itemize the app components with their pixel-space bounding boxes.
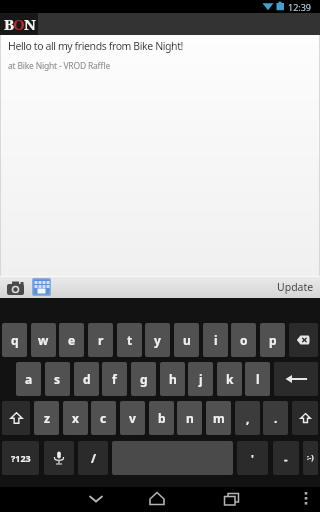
button[interactable] (32, 278, 51, 296)
button[interactable]: Update (271, 276, 320, 298)
button[interactable]: u (174, 323, 199, 357)
button[interactable]: b (149, 401, 174, 435)
button[interactable] (274, 362, 318, 396)
staticText: x (72, 410, 79, 426)
staticText: at Bike Night - VROD Raffle (8, 60, 110, 72)
button[interactable] (145, 487, 169, 512)
staticText: u (183, 332, 191, 348)
button[interactable]: f (102, 362, 127, 396)
button[interactable]: , (235, 401, 260, 435)
button[interactable]: e (59, 323, 84, 357)
button[interactable]: BON (0, 13, 38, 35)
staticText: q (11, 332, 19, 348)
staticText: v (129, 410, 136, 426)
staticText: w (38, 332, 49, 348)
button[interactable] (5, 280, 26, 295)
staticText: t (127, 332, 133, 348)
staticText: . (274, 410, 278, 426)
button[interactable]: q (2, 323, 27, 357)
staticText: c (100, 410, 107, 426)
button[interactable]: k (217, 362, 242, 396)
staticText: , (246, 410, 250, 426)
staticText: k (226, 371, 234, 387)
staticText: :-) (307, 453, 314, 463)
staticText: p (269, 332, 277, 348)
button[interactable] (84, 487, 108, 512)
button[interactable]: l (245, 362, 270, 396)
staticText: d (83, 371, 91, 387)
staticText: r (98, 332, 104, 348)
button[interactable]: s (45, 362, 70, 396)
button[interactable]: o (231, 323, 256, 357)
staticText: l (256, 371, 260, 387)
button[interactable]: . (263, 401, 288, 435)
staticText: b (158, 410, 166, 426)
button[interactable]: / (78, 441, 108, 475)
staticText: BON (4, 14, 35, 34)
button[interactable]: ?123 (2, 441, 39, 475)
staticText: a (25, 371, 33, 387)
button[interactable]: a (16, 362, 41, 396)
staticText: n (186, 410, 194, 426)
button[interactable]: y (145, 323, 170, 357)
button[interactable]: n (177, 401, 202, 435)
button[interactable]: i (203, 323, 228, 357)
staticText: Hello to all my friends from Bike Night! (8, 39, 183, 53)
button[interactable]: z (34, 401, 59, 435)
button[interactable]: t (117, 323, 142, 357)
button[interactable]: j (188, 362, 213, 396)
staticText: i (214, 332, 218, 348)
staticText: e (68, 332, 76, 348)
button[interactable] (2, 401, 30, 435)
staticText: j (199, 371, 203, 387)
button[interactable]: x (63, 401, 88, 435)
button[interactable] (44, 441, 74, 475)
staticText: - (284, 451, 288, 466)
button[interactable] (296, 487, 316, 512)
staticText: Update (277, 280, 314, 294)
button[interactable]: ' (237, 441, 268, 475)
button[interactable]: w (31, 323, 56, 357)
button[interactable] (292, 401, 318, 435)
staticText: 12:39 (288, 1, 312, 13)
staticText: y (154, 332, 161, 348)
button[interactable]: c (91, 401, 116, 435)
button[interactable]: v (120, 401, 145, 435)
staticText: / (91, 450, 96, 466)
button[interactable]: h (160, 362, 185, 396)
button[interactable]: g (131, 362, 156, 396)
button[interactable]: r (88, 323, 113, 357)
staticText: z (44, 410, 50, 426)
button[interactable]: - (273, 441, 299, 475)
button[interactable]: m (206, 401, 231, 435)
button[interactable]: :-) (303, 441, 318, 475)
staticText: ?123 (11, 452, 31, 464)
staticText: ' (251, 451, 254, 466)
button[interactable]: d (74, 362, 99, 396)
staticText: g (140, 371, 148, 387)
button[interactable] (220, 487, 244, 512)
staticText: o (240, 332, 248, 348)
staticText: h (169, 371, 177, 387)
staticText: s (54, 371, 61, 387)
staticText: m (213, 410, 225, 426)
button[interactable]: p (260, 323, 285, 357)
button[interactable] (289, 323, 318, 357)
staticText: f (112, 371, 117, 387)
